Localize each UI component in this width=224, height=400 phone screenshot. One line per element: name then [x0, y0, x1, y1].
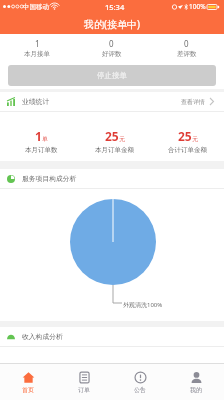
button[interactable]: 公告: [112, 364, 168, 400]
button[interactable]: 首页: [0, 364, 56, 400]
staticText: 本月接单: [24, 50, 50, 58]
staticText: 我的: [190, 386, 202, 394]
button[interactable]: 25: [151, 128, 224, 154]
staticText: 中国移动: [23, 3, 49, 11]
staticText: 查看详情: [181, 98, 205, 106]
staticText: 收入构成分析: [22, 332, 63, 341]
staticText: 停止接单: [97, 71, 127, 80]
staticText: 业绩统计: [22, 97, 50, 106]
staticText: 元: [192, 135, 198, 143]
staticText: 25: [178, 128, 192, 144]
staticText: 1: [35, 38, 40, 49]
button[interactable]: 0: [74, 38, 149, 58]
staticText: 好评数: [102, 50, 122, 58]
button[interactable]: 0: [149, 38, 224, 58]
staticText: 本月订单数: [25, 146, 58, 154]
button[interactable]: 我的: [168, 364, 224, 400]
staticText: 公告: [134, 386, 146, 394]
button[interactable]: 订单: [56, 364, 112, 400]
staticText: 首页: [22, 386, 34, 394]
staticText: 本月订单金额: [95, 146, 134, 154]
staticText: 服务项目构成分析: [22, 174, 77, 183]
button[interactable]: 停止接单: [8, 65, 216, 86]
staticText: 0: [109, 38, 114, 49]
staticText: 合计订单金额: [168, 146, 207, 154]
staticText: 1: [35, 128, 42, 144]
staticText: 订单: [78, 386, 90, 394]
staticText: 外观清洗100%: [123, 301, 163, 309]
button[interactable]: 1: [0, 38, 74, 58]
staticText: 单: [42, 135, 48, 143]
button[interactable]: 查看详情: [181, 97, 215, 106]
staticText: 差评数: [177, 50, 197, 58]
staticText: 15:34: [105, 2, 125, 12]
staticText: 元: [119, 135, 125, 143]
button[interactable]: 25: [78, 128, 151, 154]
staticText: 0: [184, 38, 189, 49]
button[interactable]: 1: [4, 128, 78, 154]
staticText: 25: [105, 128, 119, 144]
staticText: 100%: [189, 2, 206, 11]
staticText: 我的(接单中): [84, 17, 140, 31]
